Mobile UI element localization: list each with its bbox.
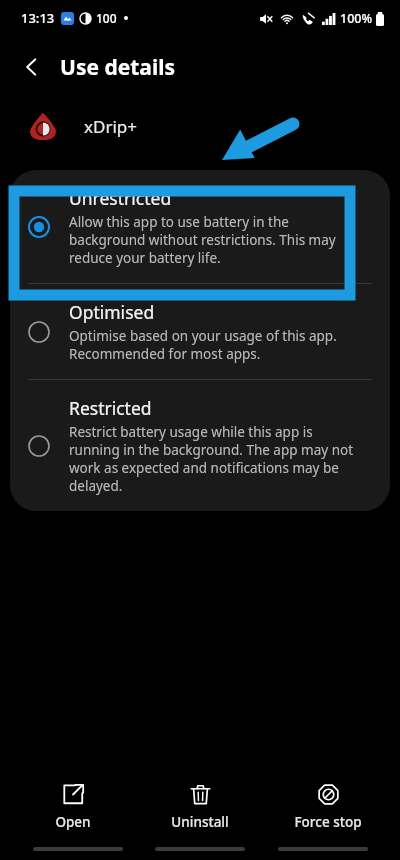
staticText: 13:13	[21, 9, 55, 27]
staticText: Force stop	[294, 813, 362, 831]
button[interactable]: Back	[8, 43, 56, 91]
staticText: Optimise based on your usage of this app…	[69, 327, 337, 363]
staticText: Restricted	[69, 396, 152, 420]
button[interactable]: Unrestricted	[10, 170, 390, 283]
staticText: Use details	[60, 53, 175, 82]
staticText: Uninstall	[171, 813, 229, 831]
staticText: Open	[55, 813, 91, 831]
staticText: Allow this app to use battery in the bac…	[69, 213, 336, 267]
button[interactable]: Restricted	[10, 380, 390, 511]
staticText: xDrip+	[84, 115, 137, 138]
staticText: 100	[96, 10, 117, 26]
staticText: Restrict battery usage while this app is…	[69, 423, 354, 495]
staticText: Unrestricted	[69, 186, 172, 210]
staticText: 100%	[340, 10, 373, 27]
button[interactable]: Optimised	[10, 284, 390, 379]
staticText: Optimised	[69, 300, 155, 324]
button[interactable]: Uninstall	[145, 779, 255, 835]
button[interactable]: Force stop	[273, 779, 383, 835]
button[interactable]: Open	[18, 779, 128, 835]
